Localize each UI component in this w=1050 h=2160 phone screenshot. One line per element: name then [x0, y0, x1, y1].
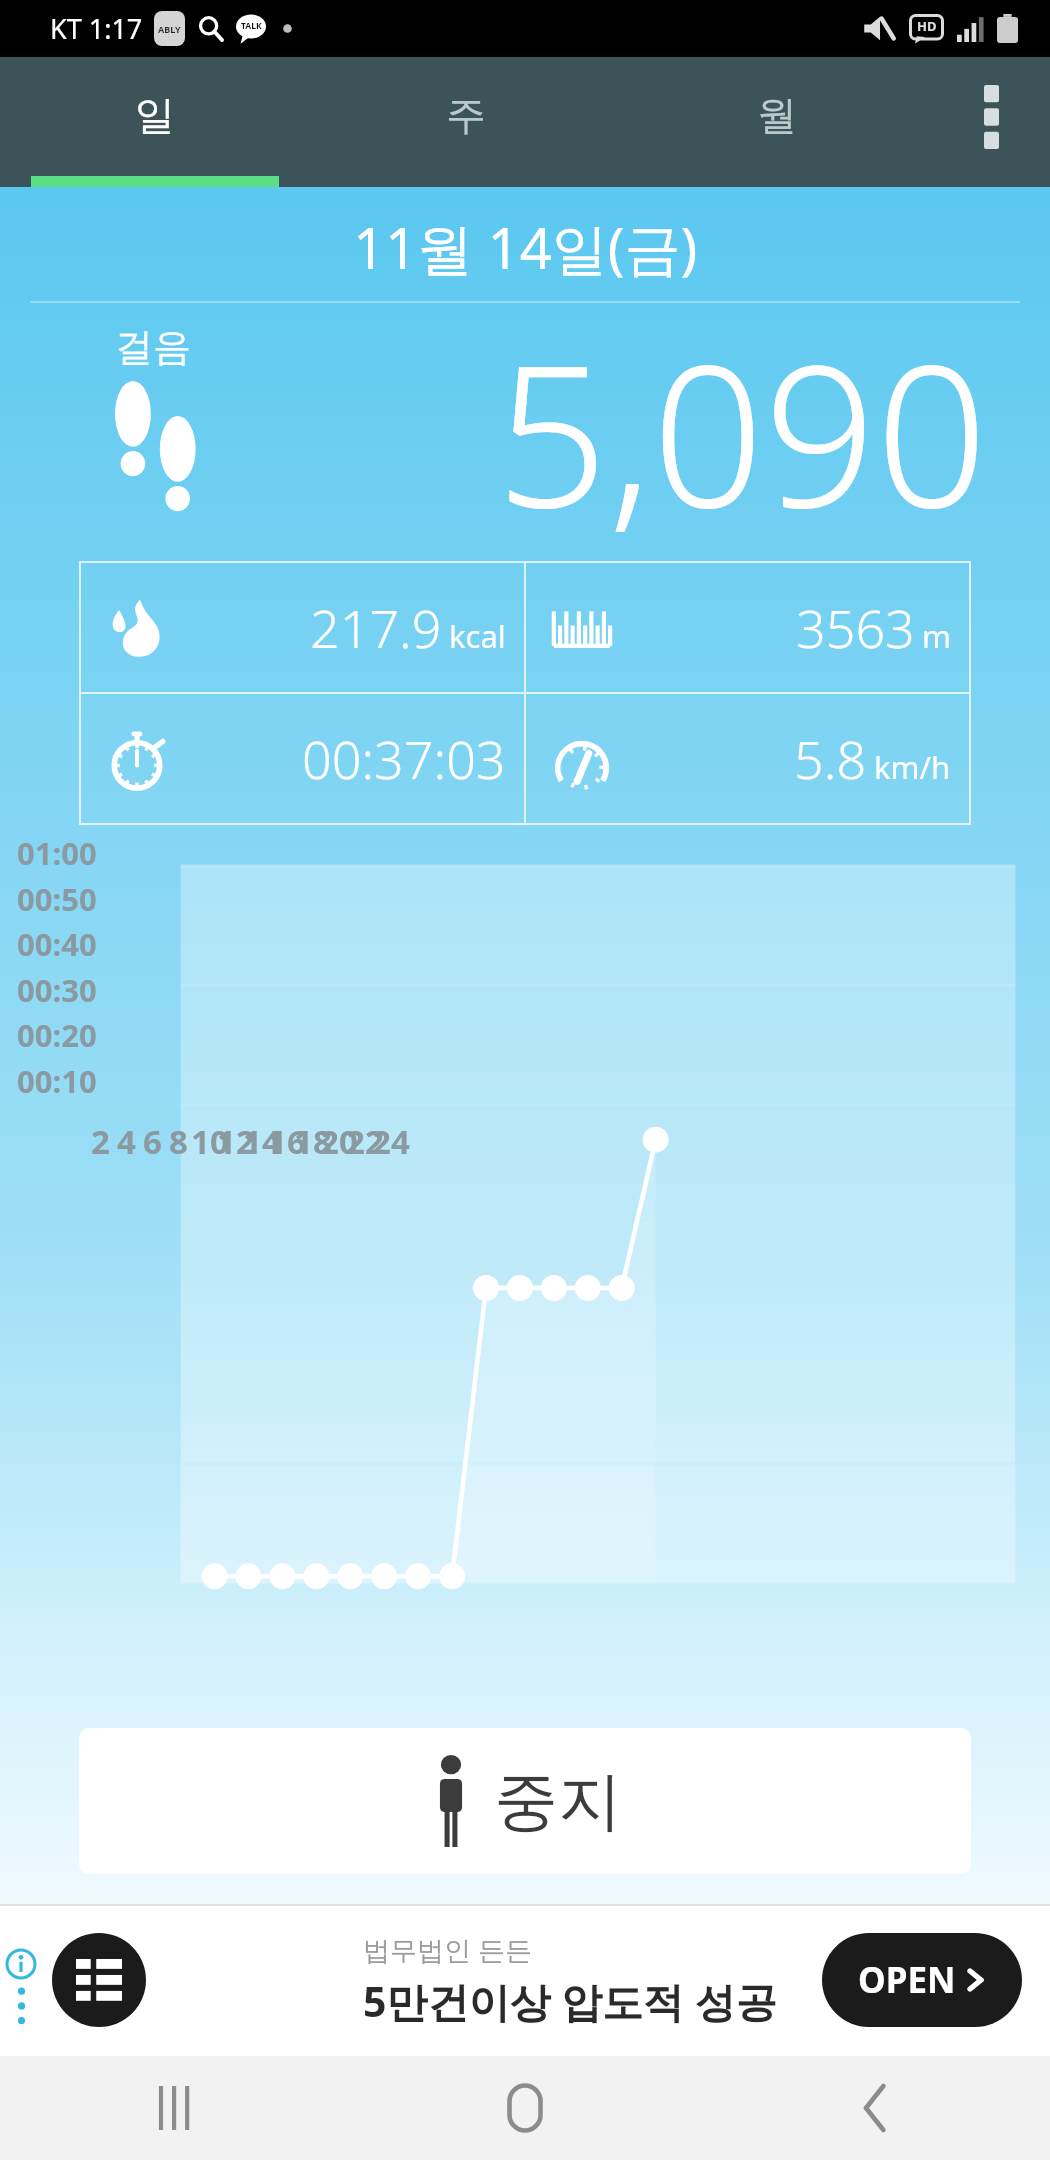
staticText: 일 [135, 90, 175, 140]
staticText: 24 [372, 1119, 410, 1164]
staticText: 5.8 [794, 723, 867, 794]
button[interactable]: Recents [0, 2056, 350, 2160]
staticText: 01:00 [17, 832, 97, 874]
staticText: 16 [268, 1119, 306, 1164]
staticText: HD [917, 17, 937, 35]
staticText: 5,090 [496, 297, 988, 555]
staticText: 12 [217, 1119, 255, 1164]
staticText: 2 [91, 1119, 110, 1164]
staticText: 주 [446, 90, 486, 140]
button[interactable]: More options [932, 57, 1050, 187]
button[interactable]: 중지 [79, 1728, 971, 1874]
staticText: 22 [346, 1119, 384, 1164]
staticText: km/h [874, 746, 951, 788]
button[interactable]: 217.9 [81, 563, 524, 692]
staticText: 00:50 [17, 878, 97, 920]
staticText: 11월 14일(금) [353, 209, 698, 285]
staticText: 00:30 [17, 969, 97, 1011]
button[interactable]: OPEN [822, 1933, 1022, 2027]
staticText: 00:10 [17, 1060, 97, 1102]
staticText: kcal [449, 615, 506, 657]
staticText: OPEN [858, 1956, 956, 2004]
staticText: 3563 [796, 592, 915, 663]
staticText: TALK [241, 20, 262, 32]
staticText: 00:37:03 [302, 723, 506, 794]
staticText: 20 [320, 1119, 358, 1164]
button[interactable]: Back [700, 2056, 1050, 2160]
button[interactable]: 11월 14일(금) [0, 209, 1050, 285]
staticText: 10 [191, 1119, 229, 1164]
staticText: m [922, 615, 951, 657]
staticText: 00:40 [17, 923, 97, 965]
staticText: 중지 [494, 1761, 622, 1842]
staticText: 걸음 [115, 323, 191, 371]
staticText: 217.9 [310, 592, 442, 663]
button[interactable]: Home [350, 2056, 700, 2160]
staticText: 14 [243, 1119, 281, 1164]
button[interactable]: 3563 [526, 563, 969, 692]
staticText: 월 [757, 90, 797, 140]
staticText: KT 1:17 [50, 10, 143, 47]
button[interactable]: 5.8 [526, 694, 969, 823]
staticText: 법무법인 든든 [363, 1931, 533, 1968]
button[interactable]: 주 [310, 57, 621, 187]
staticText: 8 [169, 1119, 188, 1164]
staticText: 6 [143, 1119, 162, 1164]
staticText: 18 [294, 1119, 332, 1164]
button[interactable]: 일 [0, 57, 310, 187]
staticText: ABLY [158, 23, 181, 35]
staticText: 5만건이상 압도적 성공 [363, 1973, 777, 2029]
button[interactable]: Advertiser [52, 1933, 146, 2027]
button[interactable]: 00:37:03 [81, 694, 524, 823]
staticText: 00:20 [17, 1014, 97, 1056]
button[interactable]: 월 [621, 57, 932, 187]
staticText: 4 [117, 1119, 136, 1164]
